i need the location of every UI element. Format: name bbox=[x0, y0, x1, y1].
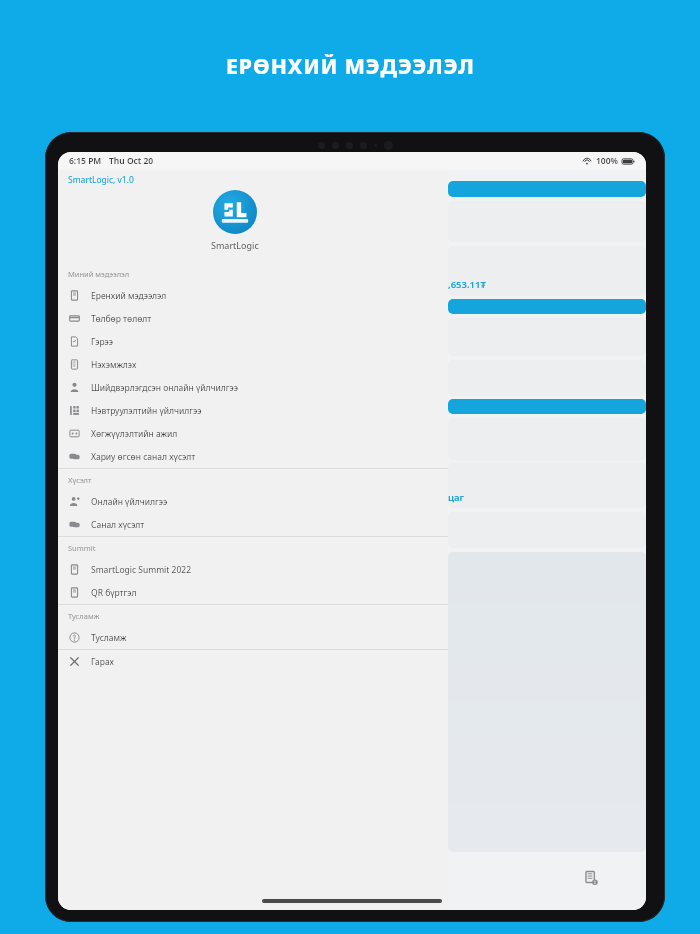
button[interactable]: Document info bbox=[581, 868, 601, 888]
button[interactable]: Шийдвэрлэгдсэн онлайн үйлчилгээ bbox=[58, 376, 448, 399]
button[interactable]: SmartLogic Summit 2022 bbox=[58, 558, 448, 581]
staticText: цаг bbox=[448, 491, 464, 504]
staticText: ЕРӨНХИЙ МЭДЭЭЛЭЛ bbox=[226, 52, 475, 81]
staticText: 100% bbox=[596, 155, 619, 167]
staticText: SmartLogic Summit 2022 bbox=[91, 564, 192, 576]
button[interactable]: Гэрээ bbox=[58, 330, 448, 353]
staticText: Еренхий мэдээлэл bbox=[91, 290, 167, 302]
staticText: Миний мэдээлэл bbox=[68, 269, 130, 279]
staticText: Хөгжүүлэлтийн ажил bbox=[91, 428, 178, 440]
staticText: Гэрээ bbox=[91, 336, 114, 348]
button[interactable]: Төлбөр төлөлт bbox=[58, 307, 448, 330]
staticText: Гарах bbox=[91, 656, 114, 668]
staticText: Тусламж bbox=[68, 611, 100, 621]
button[interactable]: QR бүртгэл bbox=[58, 581, 448, 604]
button[interactable]: Санал хүсэлт bbox=[58, 513, 448, 536]
staticText: Онлайн үйлчилгээ bbox=[91, 496, 168, 508]
button[interactable]: Гарах bbox=[58, 650, 448, 673]
staticText: Хүсэлт bbox=[68, 475, 92, 485]
staticText: SmartLogic, v1.0 bbox=[68, 174, 134, 186]
staticText: QR бүртгэл bbox=[91, 587, 137, 599]
staticText: 6:15 PM bbox=[69, 155, 102, 167]
staticText: Шийдвэрлэгдсэн онлайн үйлчилгээ bbox=[91, 382, 238, 394]
staticText: Хариу өгсөн санал хүсэлт bbox=[91, 451, 196, 463]
staticText: SmartLogic bbox=[211, 239, 259, 251]
button[interactable]: Нэвтруулэлтийн үйлчилгээ bbox=[58, 399, 448, 422]
staticText: Нэвтруулэлтийн үйлчилгээ bbox=[91, 405, 202, 417]
staticText: ,653.11₮ bbox=[448, 278, 486, 291]
button[interactable]: Нэхэмжлэх bbox=[58, 353, 448, 376]
button[interactable]: Хөгжүүлэлтийн ажил bbox=[58, 422, 448, 445]
button[interactable]: Еренхий мэдээлэл bbox=[58, 284, 448, 307]
staticText: Нэхэмжлэх bbox=[91, 359, 137, 371]
staticText: Санал хүсэлт bbox=[91, 519, 145, 531]
staticText: Thu Oct 20 bbox=[109, 155, 154, 167]
staticText: Тусламж bbox=[91, 632, 127, 644]
staticText: Төлбөр төлөлт bbox=[91, 313, 152, 325]
button[interactable]: Онлайн үйлчилгээ bbox=[58, 490, 448, 513]
button[interactable]: Хариу өгсөн санал хүсэлт bbox=[58, 445, 448, 468]
button[interactable]: Тусламж bbox=[58, 626, 448, 649]
staticText: Summit bbox=[68, 543, 96, 553]
